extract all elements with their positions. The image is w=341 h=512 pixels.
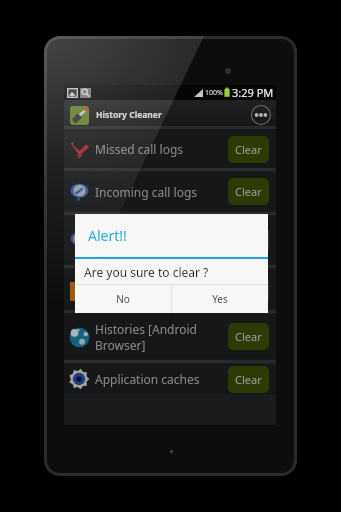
staticText: Incoming call logs: [95, 184, 225, 200]
staticText: 3:29 PM: [232, 85, 274, 100]
button[interactable]: More options: [250, 104, 272, 126]
staticText: Outgoing call logs: [95, 232, 225, 248]
button[interactable]: Clear: [228, 277, 269, 304]
button[interactable]: Clear: [228, 178, 269, 205]
staticText: Yes: [212, 292, 228, 306]
staticText: Alert!!: [88, 226, 127, 245]
button[interactable]: No: [75, 285, 171, 313]
button[interactable]: Clear: [228, 323, 269, 350]
staticText: Clear: [235, 283, 262, 298]
staticText: No: [116, 292, 130, 306]
button[interactable]: History Cleaner: [64, 100, 276, 130]
button[interactable]: Clear: [228, 227, 269, 254]
button[interactable]: Clear: [228, 136, 269, 163]
staticText: 100%: [205, 88, 223, 98]
staticText: Clear: [235, 372, 262, 387]
button[interactable]: Outgoing call logs: [64, 216, 276, 264]
button[interactable]: Histories [Android Browser]: [64, 314, 276, 359]
staticText: Clipboard data: [95, 283, 225, 299]
button[interactable]: Yes: [172, 285, 268, 313]
staticText: Clear: [235, 184, 262, 199]
staticText: Histories [Android Browser]: [95, 321, 225, 353]
button[interactable]: Application caches: [64, 364, 276, 394]
staticText: Application caches: [95, 371, 225, 387]
button[interactable]: Missed call logs: [64, 130, 276, 168]
staticText: Clear: [235, 142, 262, 157]
staticText: History Cleaner: [96, 109, 162, 121]
staticText: Clear: [235, 329, 262, 344]
staticText: Missed call logs: [95, 141, 225, 157]
button[interactable]: Clear: [228, 366, 269, 393]
button[interactable]: Incoming call logs: [64, 172, 276, 211]
staticText: Are you sure to clear ?: [84, 264, 209, 280]
button[interactable]: Clipboard data: [64, 269, 276, 312]
